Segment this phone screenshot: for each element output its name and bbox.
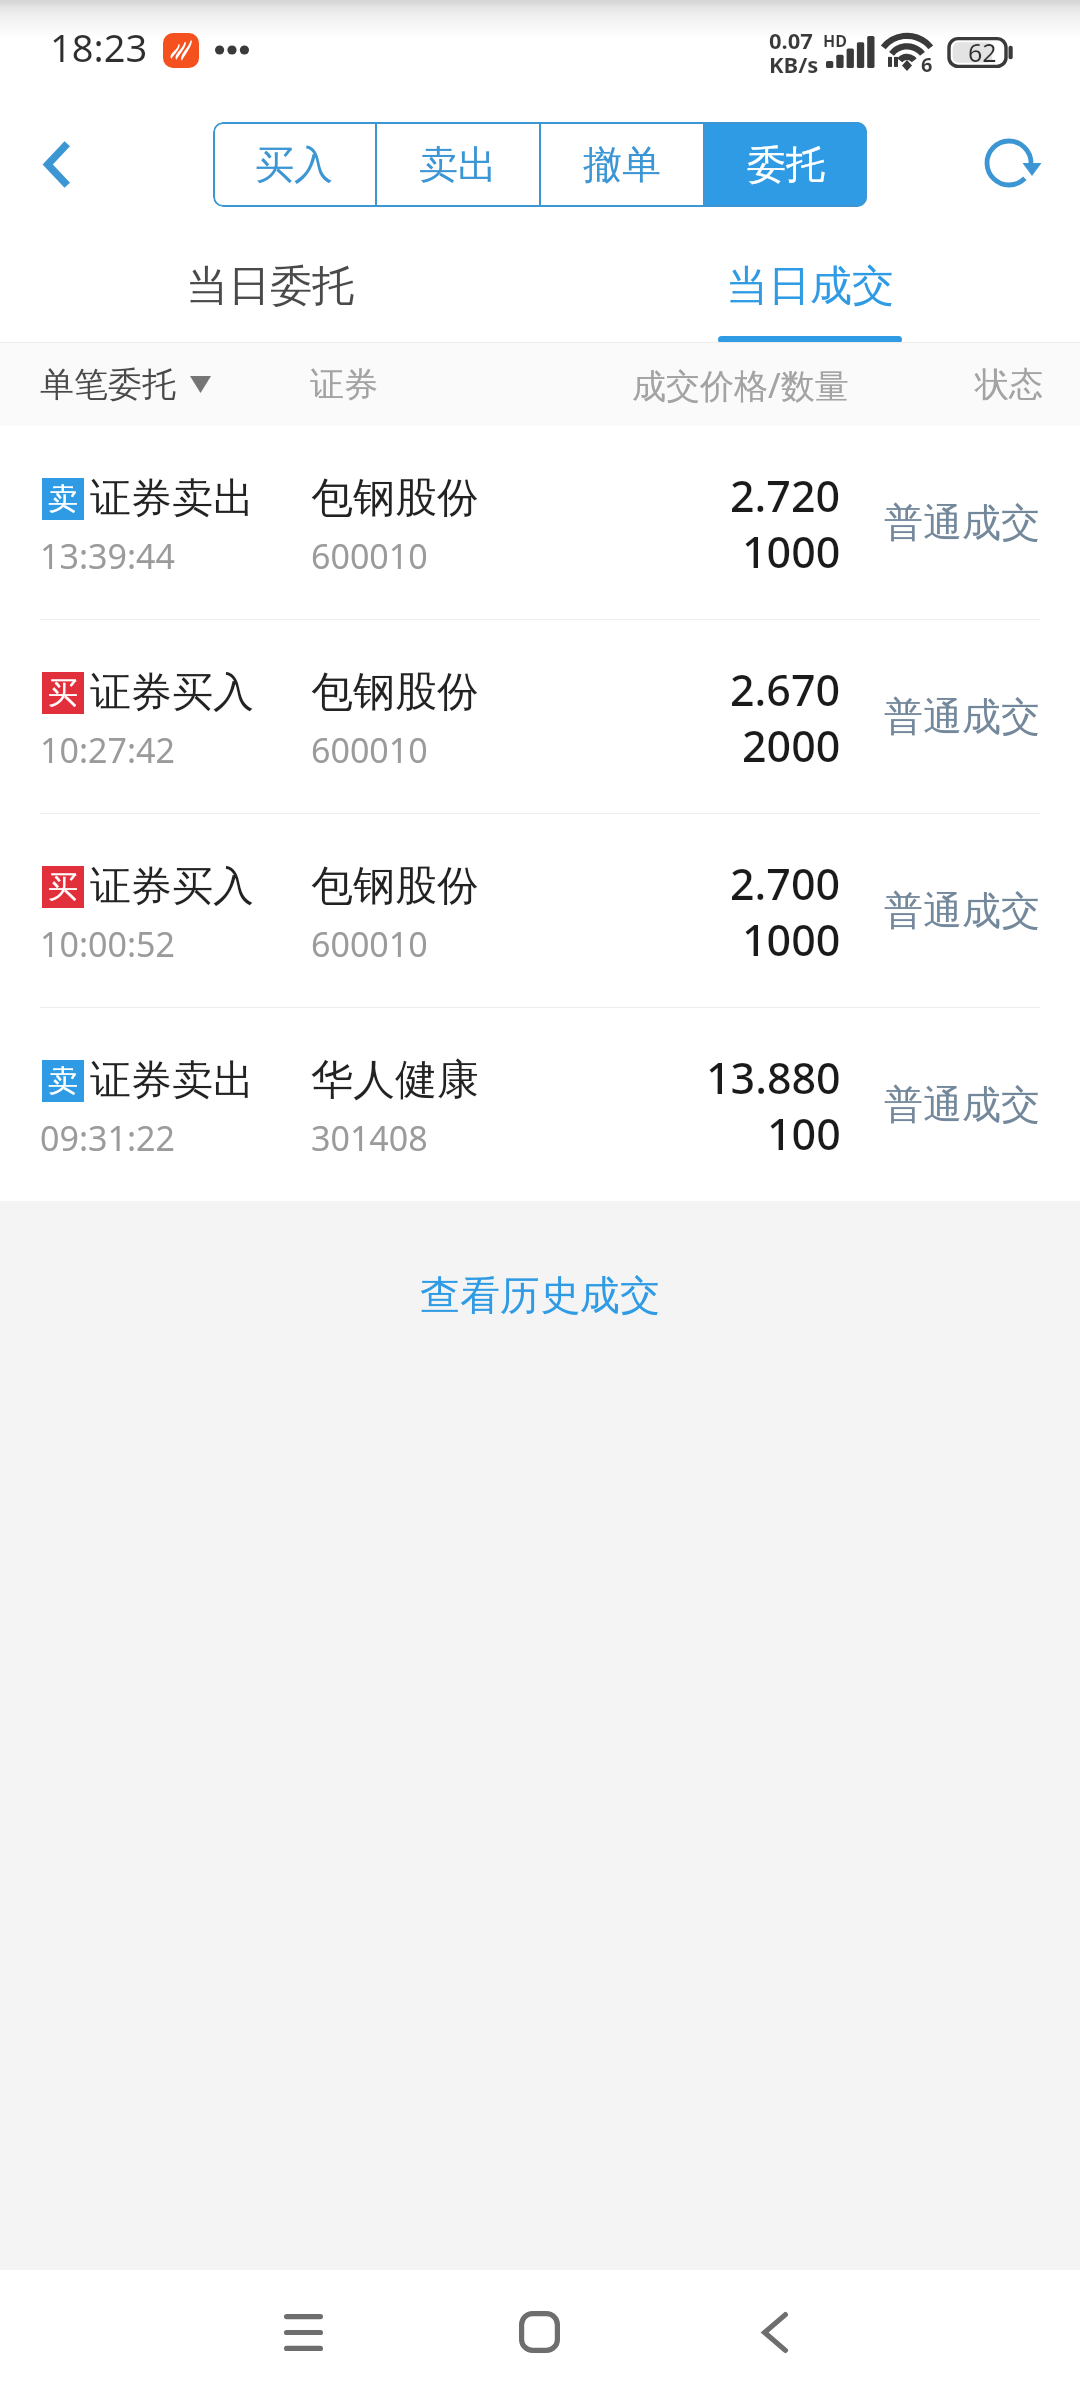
- button[interactable]: Back: [715, 2272, 835, 2392]
- button[interactable]: 查看历史成交: [0, 1201, 1080, 1401]
- button[interactable]: 买: [0, 814, 1080, 1007]
- staticText: 2000: [742, 716, 841, 775]
- staticText: 18:23: [50, 21, 148, 73]
- staticText: 6: [921, 51, 933, 78]
- staticText: 华人健康: [311, 1054, 479, 1107]
- staticText: 状态: [975, 363, 1043, 406]
- staticText: 成交价格/数量: [632, 362, 849, 408]
- staticText: 301408: [311, 1115, 428, 1161]
- staticText: 买入: [255, 140, 333, 189]
- staticText: 1000: [742, 910, 841, 969]
- staticText: 证券买入: [90, 861, 254, 913]
- staticText: 证券卖出: [90, 1055, 254, 1107]
- staticText: 普通成交: [884, 1080, 1040, 1129]
- staticText: 13:39:44: [40, 533, 175, 579]
- button[interactable]: 卖: [0, 426, 1080, 619]
- staticText: 包钢股份: [311, 666, 479, 719]
- button[interactable]: Back: [2, 109, 112, 219]
- button[interactable]: Home: [479, 2272, 599, 2392]
- staticText: 2.700: [730, 854, 841, 913]
- button[interactable]: 委托: [705, 122, 867, 207]
- staticText: 撤单: [583, 140, 661, 189]
- staticText: 1000: [742, 522, 841, 581]
- staticText: KB/s: [769, 49, 819, 79]
- staticText: HD: [823, 30, 847, 52]
- staticText: 买: [48, 868, 78, 906]
- staticText: 0.07: [769, 25, 813, 55]
- button[interactable]: Refresh: [954, 108, 1064, 218]
- staticText: 普通成交: [884, 886, 1040, 935]
- button[interactable]: Recent apps: [243, 2272, 363, 2392]
- button[interactable]: 当日委托: [0, 225, 540, 343]
- staticText: 卖: [48, 1062, 78, 1100]
- button[interactable]: 单笔委托: [40, 363, 211, 406]
- button[interactable]: 卖: [0, 1008, 1080, 1201]
- staticText: 证券: [310, 363, 378, 406]
- staticText: 证券卖出: [90, 473, 254, 525]
- staticText: 普通成交: [884, 692, 1040, 741]
- staticText: 卖出: [419, 140, 497, 189]
- staticText: 2.670: [730, 660, 841, 719]
- staticText: 普通成交: [884, 498, 1040, 547]
- staticText: 62: [968, 35, 997, 69]
- staticText: 当日委托: [186, 260, 354, 313]
- staticText: 13.880: [706, 1048, 841, 1107]
- button[interactable]: 买: [0, 620, 1080, 813]
- staticText: 100: [767, 1104, 841, 1163]
- button[interactable]: 当日成交: [540, 225, 1080, 343]
- staticText: 2.720: [730, 466, 841, 525]
- staticText: 包钢股份: [311, 860, 479, 913]
- staticText: 单笔委托: [40, 363, 176, 406]
- staticText: 10:27:42: [40, 727, 175, 773]
- staticText: 包钢股份: [311, 472, 479, 525]
- button[interactable]: 买入: [213, 122, 375, 207]
- staticText: 查看历史成交: [420, 1270, 660, 1320]
- staticText: 证券买入: [90, 667, 254, 719]
- button[interactable]: 卖出: [377, 122, 539, 207]
- staticText: 买: [48, 674, 78, 712]
- button[interactable]: 撤单: [541, 122, 703, 207]
- staticText: 10:00:52: [40, 921, 175, 967]
- staticText: 09:31:22: [40, 1115, 175, 1161]
- staticText: 600010: [311, 921, 428, 967]
- staticText: 委托: [747, 140, 825, 189]
- staticText: 600010: [311, 727, 428, 773]
- staticText: 600010: [311, 533, 428, 579]
- staticText: 卖: [48, 480, 78, 518]
- staticText: 当日成交: [726, 260, 894, 313]
